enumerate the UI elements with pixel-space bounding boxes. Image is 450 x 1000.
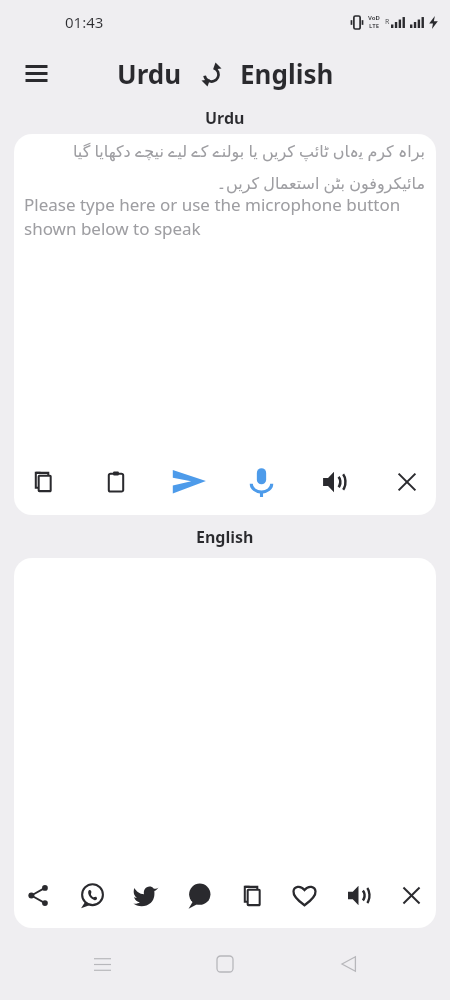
button[interactable]: Speak — [239, 460, 283, 504]
staticText: Urdu — [117, 56, 182, 91]
button[interactable]: Paste — [94, 460, 138, 504]
staticText: براہ کرم یہاں ٹائپ کریں یا بولنے کے لیے … — [24, 140, 425, 193]
staticText: 01:43 — [65, 12, 104, 32]
button[interactable]: Listen — [312, 460, 356, 504]
staticText: Please type here or use the microphone b… — [24, 193, 425, 240]
staticText: R — [385, 17, 390, 27]
button[interactable]: Swap languages — [195, 58, 227, 90]
staticText: English — [240, 56, 334, 91]
staticText: VoD — [368, 14, 380, 22]
staticText: Urdu — [205, 107, 245, 129]
staticText: LTE — [369, 22, 380, 30]
button[interactable]: Share — [18, 875, 59, 916]
button[interactable]: Clear — [385, 460, 429, 504]
button[interactable]: Menu — [14, 51, 58, 95]
staticText: English — [196, 526, 254, 548]
button[interactable]: Copy — [231, 875, 272, 916]
button[interactable]: Copy — [21, 460, 65, 504]
button[interactable]: Translate — [167, 460, 211, 504]
button[interactable]: Clear — [391, 875, 432, 916]
button[interactable]: Twitter — [125, 875, 166, 916]
button[interactable]: Favorite — [284, 875, 325, 916]
button[interactable]: WhatsApp — [71, 875, 112, 916]
button[interactable]: Back — [327, 942, 371, 986]
button[interactable]: Listen — [338, 875, 379, 916]
button[interactable]: SMS — [178, 875, 219, 916]
button[interactable]: Recents — [80, 942, 124, 986]
button[interactable]: Home — [203, 942, 247, 986]
